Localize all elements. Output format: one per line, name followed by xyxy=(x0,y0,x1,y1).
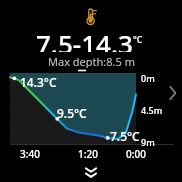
staticText: °C xyxy=(133,33,143,45)
staticText: 7.5-14.3 xyxy=(36,26,133,52)
button[interactable]: Scroll down xyxy=(83,166,99,179)
staticText: 0m xyxy=(141,72,155,84)
staticText: 4.5m xyxy=(141,104,163,116)
staticText: 7.5°C xyxy=(110,128,140,144)
staticText: 1:20 xyxy=(78,147,98,161)
staticText: 3:40 xyxy=(20,147,40,161)
button[interactable]: Water temperature xyxy=(85,8,99,25)
staticText: 9m xyxy=(141,136,155,148)
staticText: 0:00 xyxy=(126,147,146,161)
button[interactable] xyxy=(0,0,182,182)
staticText: 14.3°C xyxy=(20,74,57,90)
button[interactable]: Next xyxy=(166,82,180,104)
staticText: Max depth:8.5 m xyxy=(48,54,135,68)
staticText: 9.5°C xyxy=(57,105,87,121)
